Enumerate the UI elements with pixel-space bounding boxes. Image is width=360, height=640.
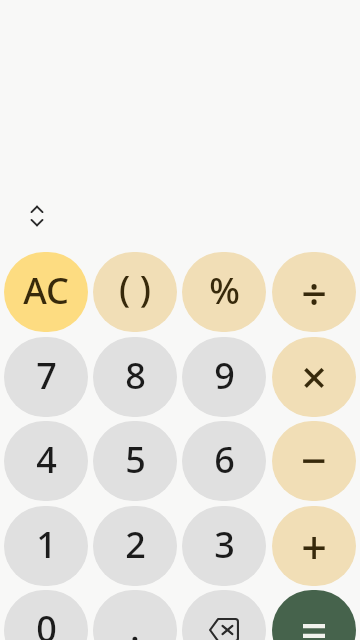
- staticText: 8: [125, 351, 146, 400]
- staticText: 0: [36, 604, 57, 640]
- staticText: +: [301, 516, 327, 577]
- staticText: −: [301, 429, 327, 490]
- staticText: 7: [36, 351, 57, 400]
- staticText: ÷: [301, 262, 327, 323]
- staticText: 6: [214, 435, 235, 484]
- button[interactable]: Parentheses: [93, 252, 177, 332]
- button[interactable]: Zero: [4, 590, 88, 640]
- staticText: .: [130, 604, 140, 640]
- staticText: 1: [36, 520, 57, 569]
- button[interactable]: Minus: [272, 421, 356, 501]
- button[interactable]: Percent: [182, 252, 266, 332]
- staticText: 3: [214, 520, 235, 569]
- staticText: AC: [23, 266, 69, 315]
- button[interactable]: Eight: [93, 337, 177, 417]
- button[interactable]: Expand history: [18, 197, 55, 234]
- button[interactable]: Five: [93, 421, 177, 501]
- button[interactable]: Decimal point: [93, 590, 177, 640]
- button[interactable]: Equals: [272, 590, 356, 640]
- staticText: 5: [125, 435, 146, 484]
- button[interactable]: Nine: [182, 337, 266, 417]
- button[interactable]: Seven: [4, 337, 88, 417]
- button[interactable]: Three: [182, 506, 266, 586]
- button[interactable]: Plus: [272, 506, 356, 586]
- staticText: 2: [125, 520, 146, 569]
- button[interactable]: Six: [182, 421, 266, 501]
- staticText: ×: [301, 346, 327, 407]
- staticText: %: [209, 266, 240, 315]
- staticText: 9: [214, 351, 235, 400]
- staticText: ( ): [119, 264, 151, 313]
- button[interactable]: Four: [4, 421, 88, 501]
- staticText: 4: [36, 435, 57, 484]
- button[interactable]: Multiply: [272, 337, 356, 417]
- button[interactable]: One: [4, 506, 88, 586]
- button[interactable]: Backspace: [182, 590, 266, 640]
- button[interactable]: Divide: [272, 252, 356, 332]
- button[interactable]: All clear: [4, 252, 88, 332]
- button[interactable]: Two: [93, 506, 177, 586]
